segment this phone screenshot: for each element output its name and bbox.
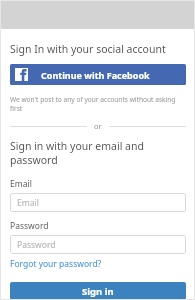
staticText: Forgot your password? [10,258,102,270]
staticText: or [94,121,102,131]
button[interactable]: Password [10,235,186,254]
staticText: Continue with Facebook [41,69,150,81]
staticText: Password [17,239,56,251]
button[interactable]: Email [10,193,186,212]
button[interactable]: Forgot your password? [10,258,102,270]
staticText: Email [10,178,32,190]
staticText: Sign in [82,285,114,298]
button[interactable]: Facebook [10,64,186,85]
staticText: Email [17,197,39,209]
staticText: Password [10,220,49,232]
other: Facebook [15,68,28,81]
staticText: We won't post to any of your accounts wi… [10,95,186,113]
staticText: Sign in with your email and password [10,139,186,167]
staticText: Sign In with your social account [10,42,166,56]
button[interactable]: Sign in [10,282,186,300]
